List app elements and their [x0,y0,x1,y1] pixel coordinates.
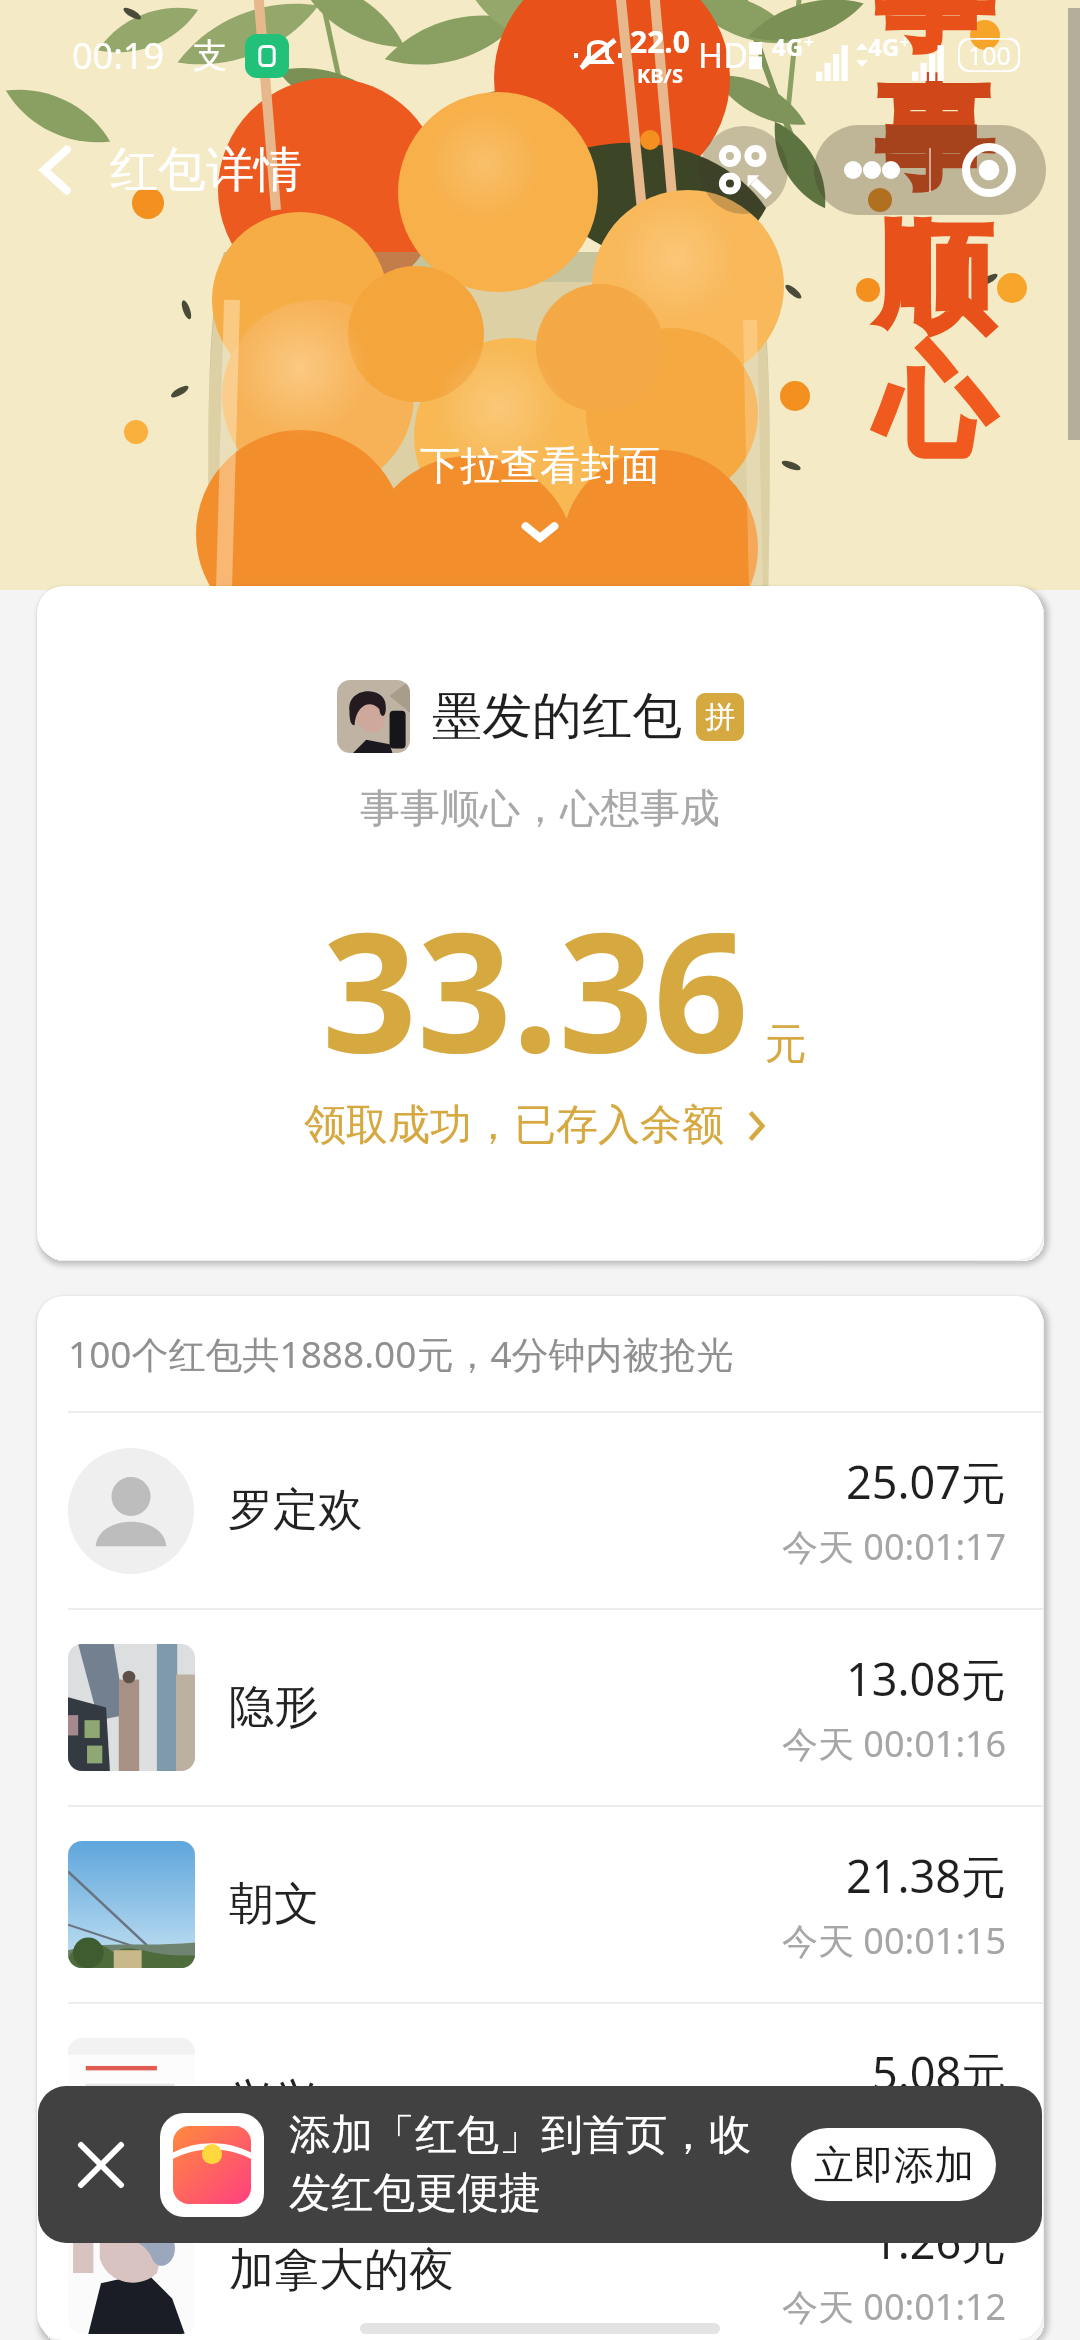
staticText: 13.08元 [846,1648,1007,1709]
staticText: 元 [765,1018,807,1071]
staticText: 今天 00:01:16 [782,1719,1007,1768]
staticText: KB/S [637,62,683,89]
staticText: 下拉查看封面 [420,440,660,490]
staticText: 今天 00:01:15 [782,1916,1007,1965]
staticText: 事 [875,0,993,73]
button[interactable]: More [814,125,929,215]
staticText: 22.0 [630,21,690,62]
staticText: 21.38元 [846,1845,1007,1906]
button[interactable]: 兴兴 [37,2004,1043,2199]
staticText: 00:19 [72,31,165,80]
staticText: 添加「红包」到首页，收发红包更便捷 [289,2109,751,2220]
staticText: 今天 00:01:14 [782,2113,1007,2162]
staticText: 罗定欢 [228,1482,363,1539]
staticText: 4G [772,30,804,63]
staticText: 100个红包共1888.00元，4分钟内被抢光 [68,1328,734,1379]
staticText: 4G [868,30,900,63]
staticText: 墨发的红包 [432,685,682,748]
staticText: 100 [968,38,1011,72]
staticText: 事事顺心，心想事成 [360,783,720,833]
button[interactable]: Mini programs [700,126,788,214]
staticText: 红包详情 [110,140,302,200]
button[interactable]: 下拉查看封面 [0,440,1080,544]
button[interactable]: 加拿大的夜 [37,2201,1043,2340]
staticText: 朝文 [229,1876,319,1933]
staticText: 1.26元 [872,2211,1007,2272]
staticText: 立即添加 [814,2140,974,2190]
button[interactable]: Close [931,125,1046,215]
staticText: 今天 00:01:12 [782,2282,1007,2331]
staticText: 25.07元 [846,1451,1007,1512]
staticText: 顺 [875,204,993,353]
staticText: 领取成功，已存入余额 [304,1099,724,1152]
staticText: 5.08元 [872,2042,1007,2103]
staticText: 兴兴 [229,2073,319,2130]
button[interactable]: 隐形 [37,1610,1043,1805]
button[interactable]: Close [64,2128,138,2202]
staticText: 加拿大的夜 [229,2242,454,2299]
staticText: HD [698,32,749,78]
staticText: 拼 [705,698,735,736]
button[interactable]: 领取成功，已存入余额 [294,1093,786,1158]
button[interactable]: 立即添加 [791,2128,996,2201]
staticText: 心 [875,330,993,479]
staticText: 支 [193,34,227,77]
staticText: 事 [875,62,993,211]
staticText: 33.36 [322,875,749,1101]
button[interactable]: Back [0,115,110,225]
staticText: + [900,30,910,53]
button[interactable]: 罗定欢 [37,1413,1043,1608]
staticText: + [804,30,814,53]
staticText: 今天 00:01:17 [782,1522,1007,1571]
button[interactable]: 朝文 [37,1807,1043,2002]
staticText: 隐形 [229,1679,319,1736]
